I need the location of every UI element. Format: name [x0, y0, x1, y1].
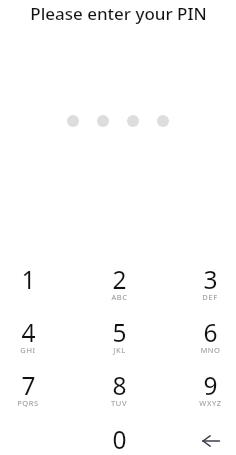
button[interactable]: 0 [91, 414, 147, 455]
staticText: WXYZ [199, 398, 222, 408]
button[interactable]: Backspace [182, 414, 236, 455]
button[interactable]: 1 [0, 254, 56, 307]
button[interactable]: 6 [182, 307, 236, 360]
staticText: 7 [21, 369, 36, 402]
staticText: GHI [20, 345, 36, 355]
staticText: 3 [203, 263, 218, 296]
staticText: TUV [111, 398, 127, 408]
button[interactable]: 2 [91, 254, 147, 307]
staticText: 0 [112, 423, 127, 455]
staticText: 4 [21, 316, 36, 349]
staticText: 8 [112, 369, 127, 402]
button[interactable]: 3 [182, 254, 236, 307]
staticText: 5 [112, 316, 127, 349]
button[interactable]: 5 [91, 307, 147, 360]
staticText: 1 [21, 263, 36, 296]
staticText: ABC [111, 292, 128, 302]
staticText: Please enter your PIN [30, 2, 207, 25]
button[interactable]: 9 [182, 360, 236, 413]
staticText: PQRS [17, 398, 39, 408]
button[interactable]: 8 [91, 360, 147, 413]
button[interactable]: 4 [0, 307, 56, 360]
button[interactable]: 7 [0, 360, 56, 413]
staticText: MNO [200, 345, 221, 355]
staticText: JKL [113, 345, 126, 355]
staticText: 2 [112, 263, 127, 296]
staticText: 6 [203, 316, 218, 349]
staticText: 9 [203, 369, 218, 402]
staticText: DEF [202, 292, 218, 302]
